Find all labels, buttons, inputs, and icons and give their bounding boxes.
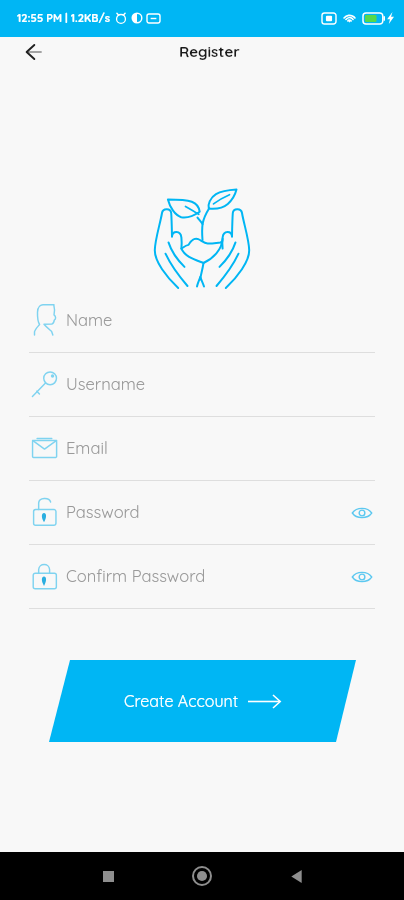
button[interactable]: Password: [0, 481, 404, 544]
button[interactable]: Toggle password visibility: [348, 563, 376, 591]
button[interactable]: Username: [0, 353, 404, 416]
button[interactable]: Confirm Password: [0, 545, 404, 608]
staticText: 12:55 PM | 1.2KB/s: [17, 11, 111, 25]
staticText: Email: [66, 437, 108, 458]
staticText: Create Account: [124, 691, 239, 711]
button[interactable]: Back: [19, 37, 49, 67]
staticText: Username: [66, 373, 146, 394]
staticText: Password: [66, 501, 140, 522]
button[interactable]: Toggle password visibility: [348, 499, 376, 527]
button[interactable]: Back: [278, 858, 314, 894]
button[interactable]: Recents: [90, 858, 126, 894]
button[interactable]: Email: [0, 417, 404, 480]
staticText: Confirm Password: [66, 565, 206, 586]
button[interactable]: Home: [184, 858, 220, 894]
button[interactable]: Create Account: [0, 660, 404, 742]
staticText: Register: [179, 42, 240, 61]
staticText: Name: [66, 309, 113, 330]
button[interactable]: Name: [0, 289, 404, 352]
